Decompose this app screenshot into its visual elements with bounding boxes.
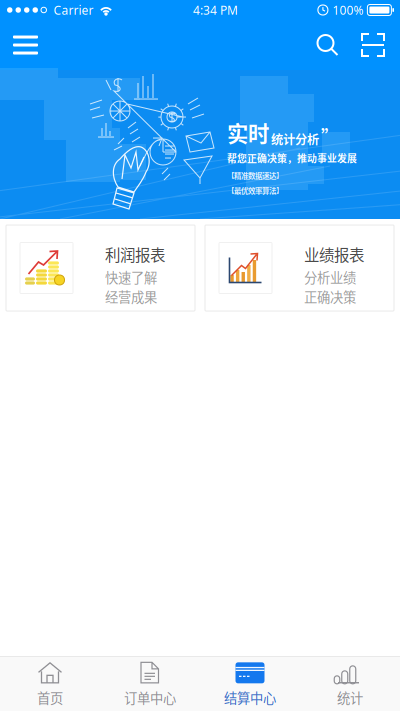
staticText: Carrier <box>53 2 93 18</box>
staticText: 统计分析 <box>271 130 319 148</box>
staticText: 正确决策 <box>304 287 356 306</box>
staticText: 实时 <box>227 117 269 148</box>
staticText: 业绩报表 <box>304 243 364 265</box>
button[interactable]: 统计 <box>300 657 400 711</box>
button[interactable]: 利润报表 <box>6 225 195 311</box>
staticText: 帮您正确决策，推动事业发展 <box>227 151 357 165</box>
button[interactable]: Scan <box>351 20 400 70</box>
button[interactable]: 首页 <box>0 657 100 711</box>
staticText: 【最优效率算法】 <box>227 185 283 196</box>
staticText: 结算中心 <box>224 688 276 707</box>
staticText: 经营成果 <box>105 287 157 306</box>
button[interactable]: 业绩报表 <box>205 225 394 311</box>
staticText: 4:34 PM <box>193 2 238 18</box>
button[interactable]: Menu <box>0 20 53 70</box>
staticText: 订单中心 <box>124 688 176 707</box>
staticText: 统计 <box>337 688 363 707</box>
staticText: 100% <box>332 2 363 18</box>
staticText: 快速了解 <box>105 267 157 287</box>
button[interactable]: Search <box>306 20 351 70</box>
button[interactable]: 订单中心 <box>100 657 200 711</box>
staticText: 【精准数据速达】 <box>227 170 283 181</box>
staticText: 分析业绩 <box>304 267 356 287</box>
staticText: 首页 <box>37 688 63 707</box>
staticText: 利润报表 <box>105 243 165 265</box>
button[interactable]: 结算中心 <box>200 657 300 711</box>
staticText: ” <box>321 123 338 148</box>
